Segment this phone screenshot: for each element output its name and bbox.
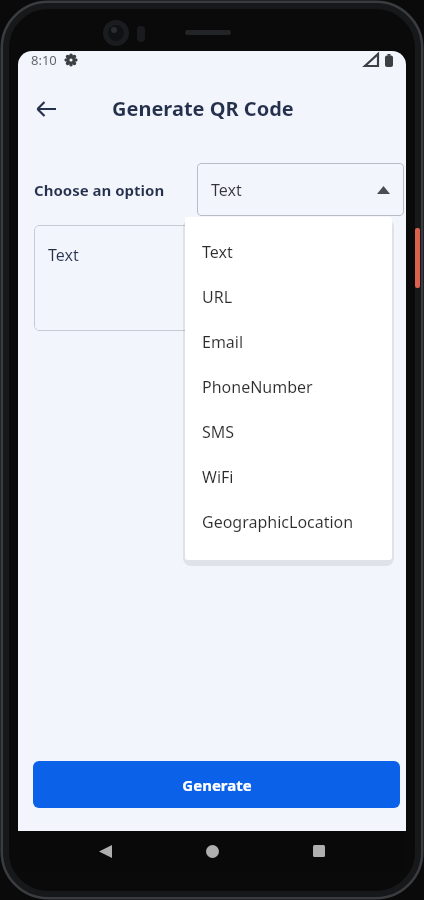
staticText: 8:10 xyxy=(31,51,57,69)
staticText: Generate xyxy=(182,775,252,795)
button[interactable]: Text xyxy=(34,225,392,331)
button[interactable]: Back xyxy=(85,831,125,871)
button[interactable]: Back xyxy=(24,87,68,131)
staticText: SMS xyxy=(202,421,235,443)
staticText: Text xyxy=(211,179,242,201)
button[interactable]: Text xyxy=(185,229,392,274)
button[interactable]: Recents xyxy=(299,831,339,871)
button[interactable]: Home xyxy=(192,831,232,871)
button[interactable]: Email xyxy=(185,319,392,364)
staticText: Choose an option xyxy=(34,180,165,200)
button[interactable]: GeographicLocation xyxy=(185,499,392,544)
staticText: Email xyxy=(202,331,244,353)
button[interactable]: Generate xyxy=(33,761,400,808)
button[interactable]: PhoneNumber xyxy=(185,364,392,409)
button[interactable]: Text xyxy=(197,163,404,216)
button[interactable]: WiFi xyxy=(185,454,392,499)
staticText: WiFi xyxy=(202,466,234,488)
staticText: Text xyxy=(48,244,79,266)
button[interactable]: URL xyxy=(185,274,392,319)
staticText: GeographicLocation xyxy=(202,511,354,533)
staticText: PhoneNumber xyxy=(202,376,313,398)
staticText: URL xyxy=(202,286,233,308)
staticText: Generate QR Code xyxy=(112,95,294,122)
staticText: Text xyxy=(202,241,233,263)
button[interactable]: SMS xyxy=(185,409,392,454)
